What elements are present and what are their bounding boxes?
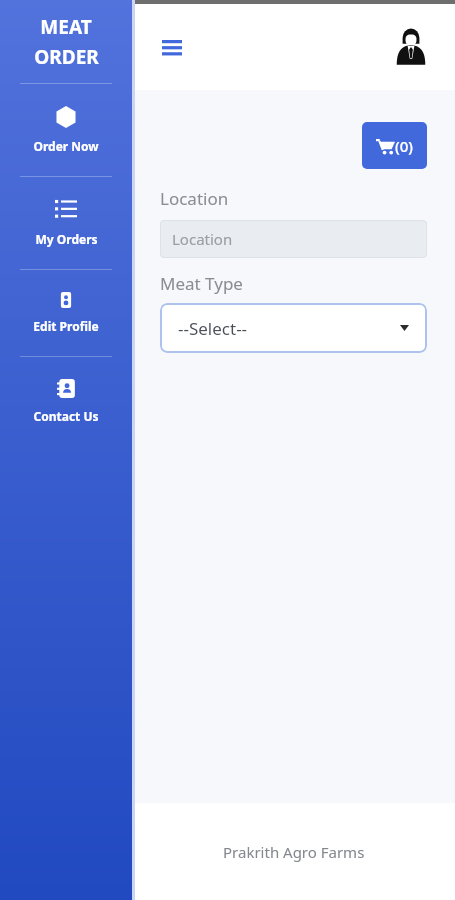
button[interactable]: --Select-- — [160, 303, 427, 353]
button[interactable]: Contact Us — [0, 357, 132, 446]
staticText: ORDER — [34, 44, 99, 70]
staticText: Meat Type — [160, 272, 243, 295]
staticText: (0) — [395, 136, 413, 156]
staticText: Location — [172, 229, 233, 249]
button[interactable]: Location — [160, 220, 427, 258]
staticText: My Orders — [35, 231, 98, 247]
staticText: Prakrith Agro Farms — [223, 842, 365, 862]
button[interactable]: Order Now — [0, 84, 132, 176]
staticText: MEAT — [40, 14, 92, 40]
staticText: Location — [160, 187, 229, 210]
staticText: --Select-- — [178, 317, 248, 340]
button[interactable]: Edit Profile — [0, 270, 132, 356]
staticText: Order Now — [33, 138, 99, 154]
button[interactable]: My Orders — [0, 177, 132, 269]
staticText: Contact Us — [33, 408, 99, 424]
button[interactable]: Account — [389, 25, 433, 69]
staticText: Edit Profile — [33, 318, 99, 334]
button[interactable]: Open navigation menu — [154, 29, 190, 65]
button[interactable]: (0) — [362, 122, 427, 169]
